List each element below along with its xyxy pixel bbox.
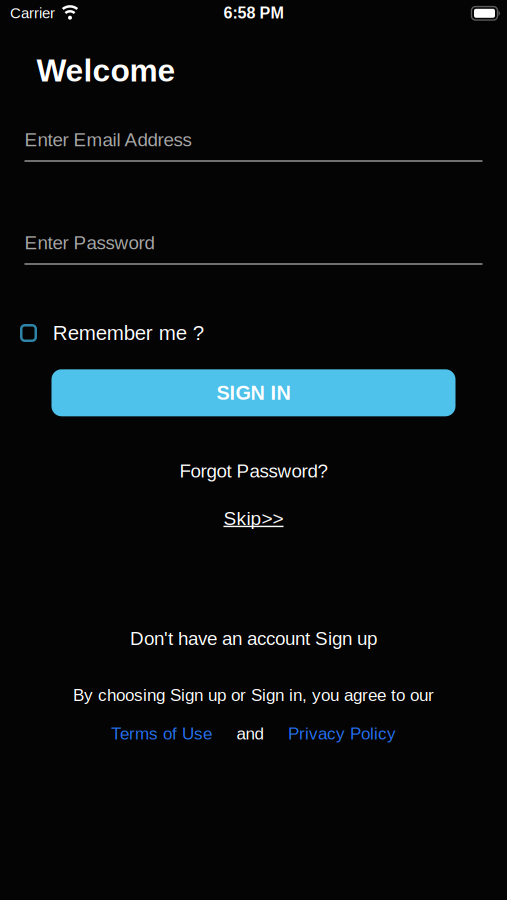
staticText: Enter Password bbox=[24, 232, 154, 253]
button[interactable]: Don't have an account Sign up bbox=[130, 628, 377, 649]
staticText: 6:58 PM bbox=[223, 4, 283, 22]
staticText: Remember me ? bbox=[53, 321, 204, 344]
button[interactable]: Skip>> bbox=[223, 508, 283, 529]
staticText: Privacy Policy bbox=[288, 724, 396, 743]
button[interactable]: Enter Email Address bbox=[24, 129, 482, 162]
staticText: Forgot Password? bbox=[179, 460, 327, 481]
button[interactable]: Forgot Password? bbox=[179, 460, 327, 481]
staticText: Enter Email Address bbox=[24, 129, 191, 150]
button[interactable]: SIGN IN bbox=[51, 369, 455, 416]
button[interactable]: Terms of Use bbox=[111, 724, 212, 743]
staticText: Don't have an account Sign up bbox=[130, 628, 377, 649]
staticText: Carrier bbox=[10, 5, 55, 21]
staticText: Welcome bbox=[36, 53, 175, 88]
button[interactable]: Enter Password bbox=[24, 232, 482, 265]
staticText: By choosing Sign up or Sign in, you agre… bbox=[73, 685, 434, 705]
staticText: Terms of Use bbox=[111, 724, 212, 743]
staticText: and bbox=[236, 724, 263, 743]
staticText: SIGN IN bbox=[216, 382, 290, 404]
button[interactable]: Privacy Policy bbox=[288, 724, 396, 743]
button[interactable]: Remember me ? bbox=[21, 321, 488, 344]
staticText: Skip>> bbox=[223, 508, 283, 529]
